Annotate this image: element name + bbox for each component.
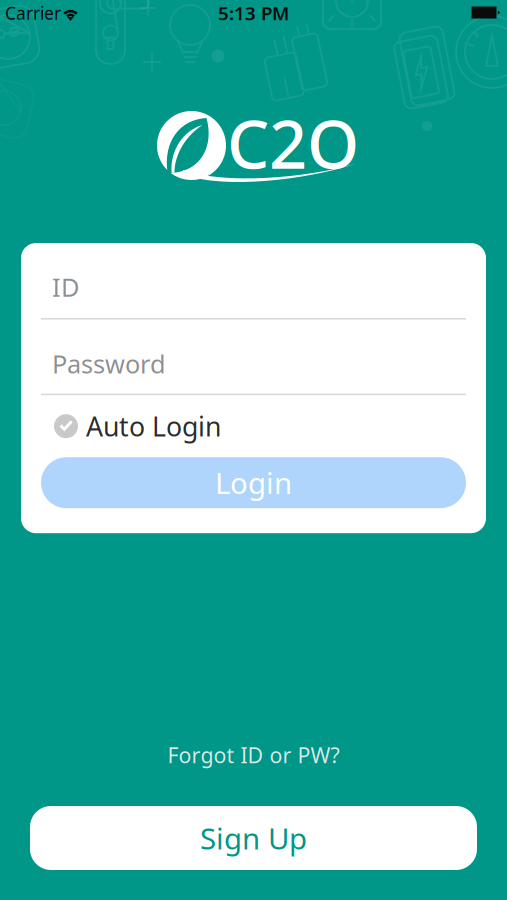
staticText: Login — [215, 463, 292, 502]
staticText: 5:13 PM — [218, 1, 289, 25]
staticText: Password — [52, 347, 166, 380]
staticText: Forgot ID or PW? — [167, 741, 339, 769]
button[interactable]: ID — [41, 263, 466, 318]
button[interactable]: Forgot ID or PW? — [167, 740, 339, 770]
staticText: ID — [52, 270, 79, 304]
staticText: Sign Up — [200, 818, 307, 857]
staticText: Carrier — [5, 1, 61, 24]
staticText: Auto Login — [86, 408, 221, 444]
staticText: C2O — [227, 99, 359, 187]
button[interactable]: Sign Up — [30, 806, 477, 870]
button[interactable]: Auto Login — [41, 405, 466, 447]
button[interactable]: Password — [41, 342, 466, 394]
button[interactable]: Login — [41, 457, 466, 508]
